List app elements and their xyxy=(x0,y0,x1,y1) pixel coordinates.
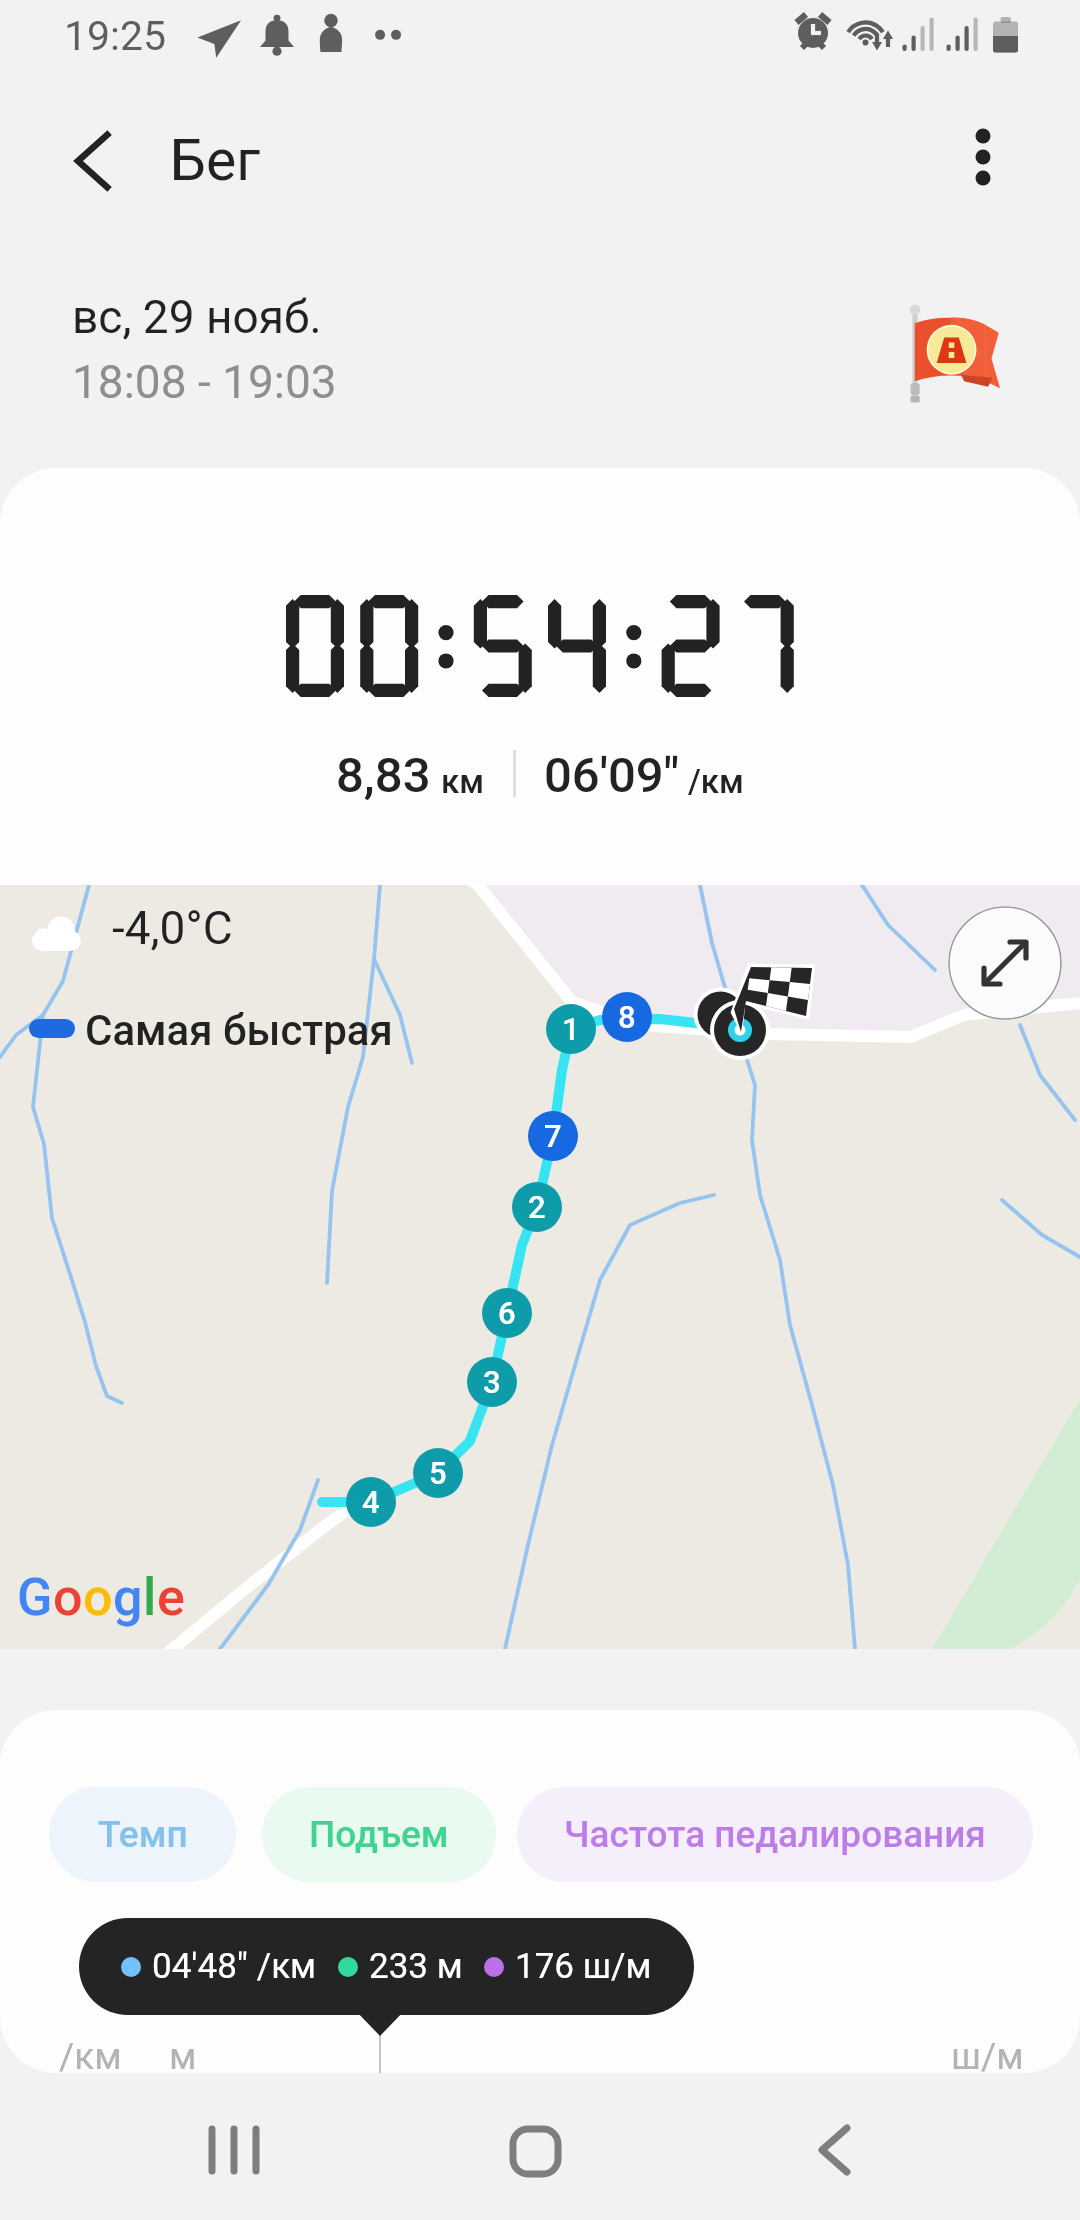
staticText: Самая быстрая xyxy=(85,1006,393,1055)
button[interactable]: 5 xyxy=(413,1448,463,1498)
button[interactable]: 6 xyxy=(482,1288,532,1338)
staticText: Бег xyxy=(170,127,261,194)
button[interactable]: Частота педалирования xyxy=(517,1787,1033,1882)
staticText: /км xyxy=(688,762,744,801)
button[interactable]: Home xyxy=(462,2078,607,2220)
button[interactable]: Expand map xyxy=(948,906,1062,1020)
staticText: g xyxy=(113,1567,143,1628)
staticText: /км xyxy=(59,2035,122,2073)
staticText: Подъем xyxy=(309,1813,449,1856)
button[interactable]: 4 xyxy=(346,1477,396,1527)
button[interactable]: Recent apps xyxy=(160,2078,305,2220)
staticText: ш/м xyxy=(951,2035,1024,2073)
button[interactable]: 1 xyxy=(546,1004,596,1054)
button[interactable]: Темп xyxy=(49,1787,236,1882)
staticText: 8 xyxy=(618,999,636,1035)
staticText: 06'09" xyxy=(544,747,680,804)
staticText: 3 xyxy=(483,1364,501,1400)
staticText: 5 xyxy=(429,1455,447,1491)
button[interactable]: 2 xyxy=(512,1182,562,1232)
staticText: м xyxy=(169,2035,197,2073)
staticText: 6 xyxy=(498,1295,516,1331)
staticText: G xyxy=(17,1567,53,1628)
button[interactable]: Подъем xyxy=(262,1787,496,1882)
staticText: 04'48" /км xyxy=(152,1946,317,1987)
staticText: 233 м xyxy=(369,1946,463,1987)
staticText: Частота педалирования xyxy=(564,1813,986,1856)
staticText: 176 ш/м xyxy=(515,1946,652,1987)
staticText: Темп xyxy=(98,1813,188,1856)
staticText: l xyxy=(143,1567,157,1628)
button[interactable]: Back xyxy=(762,2078,907,2220)
button[interactable]: 7 xyxy=(528,1111,578,1161)
staticText: 8,83 xyxy=(336,747,431,804)
staticText: вс, 29 нояб. xyxy=(72,290,322,344)
button[interactable]: Back xyxy=(50,118,136,204)
staticText: 2 xyxy=(528,1189,546,1225)
button[interactable]: Finish point xyxy=(696,962,826,1062)
staticText: 4 xyxy=(362,1484,380,1520)
staticText: 19:25 xyxy=(64,12,167,60)
button[interactable]: 3 xyxy=(467,1357,517,1407)
staticText: 18:08 - 19:03 xyxy=(72,355,337,409)
staticText: 1 xyxy=(562,1011,580,1047)
staticText: км xyxy=(441,762,485,801)
button[interactable]: More options xyxy=(940,114,1026,200)
staticText: -4,0°C xyxy=(112,901,233,955)
button[interactable]: 8 xyxy=(602,992,652,1042)
staticText: o xyxy=(83,1567,113,1628)
staticText: o xyxy=(53,1567,83,1628)
staticText: e xyxy=(157,1567,185,1628)
staticText: 7 xyxy=(544,1118,562,1154)
